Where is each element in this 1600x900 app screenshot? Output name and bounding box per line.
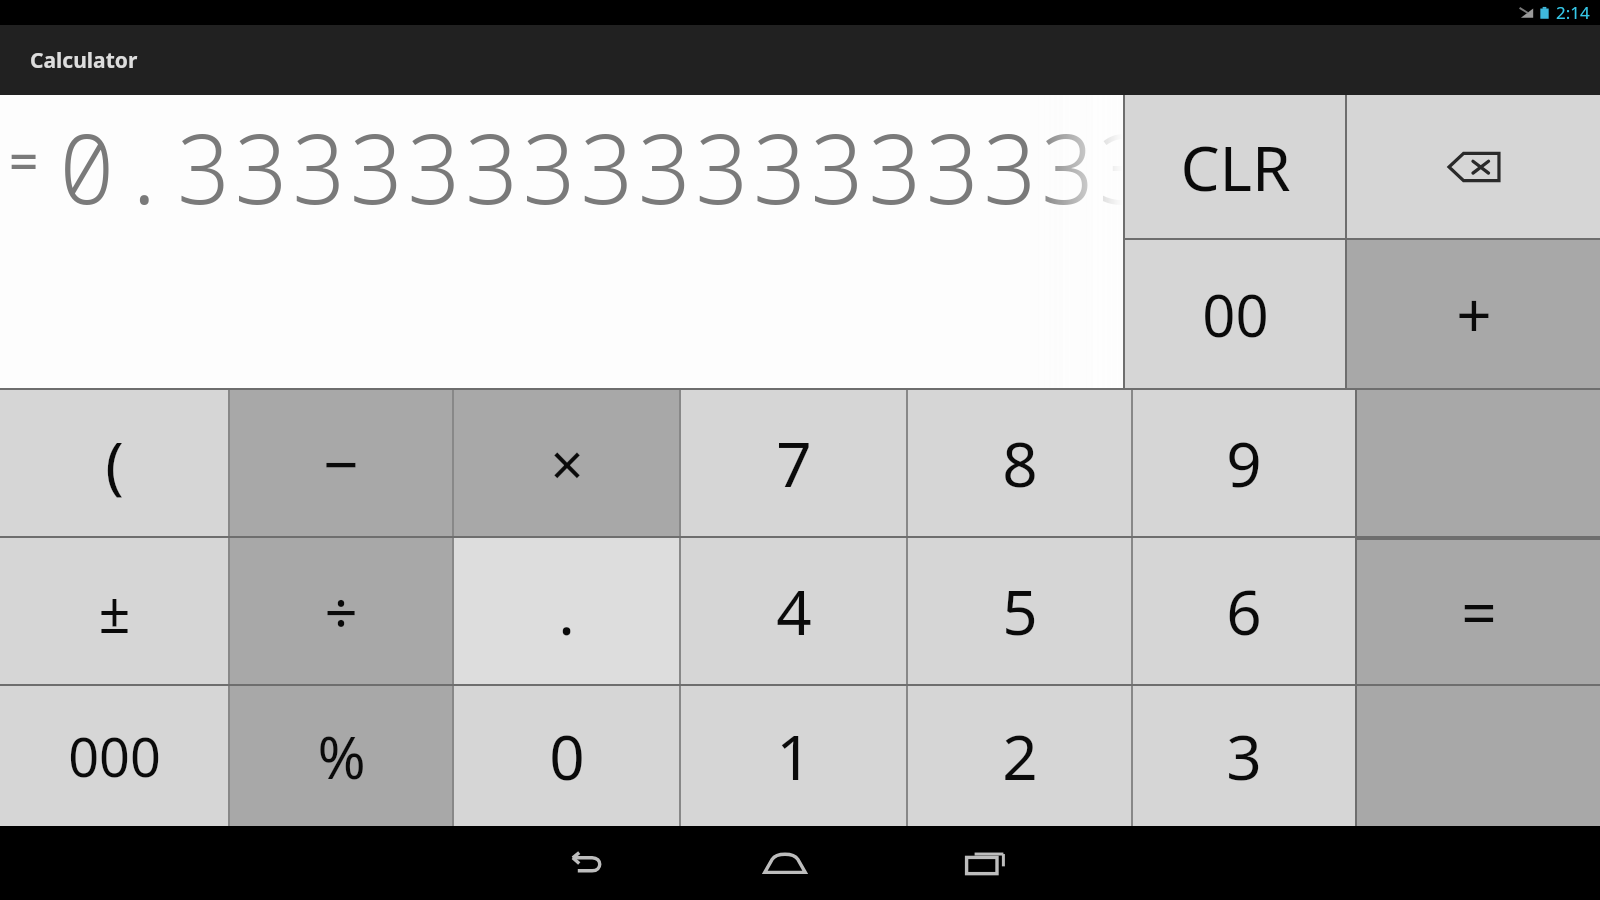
button[interactable]: = — [1357, 540, 1600, 684]
staticText: − — [323, 421, 359, 505]
button[interactable]: 4 — [681, 538, 906, 684]
staticText: . — [558, 569, 575, 653]
button[interactable]: Backspace — [1347, 95, 1600, 238]
staticText: + — [1456, 272, 1492, 356]
button[interactable]: Back — [520, 826, 650, 900]
staticText: 8 — [1002, 421, 1038, 505]
staticText: 5 — [1002, 569, 1038, 653]
staticText: = — [1461, 570, 1497, 654]
staticText: 0.3333333333333333333 — [58, 101, 1123, 232]
staticText: 00 — [1202, 275, 1269, 354]
button[interactable]: 0 — [454, 686, 679, 826]
button[interactable]: ± — [0, 538, 228, 684]
staticText: × — [550, 424, 584, 503]
button[interactable]: % — [230, 686, 452, 826]
staticText: 3 — [1226, 714, 1262, 798]
button[interactable]: CLR — [1125, 95, 1345, 238]
button[interactable]: Home — [720, 826, 850, 900]
button[interactable]: 9 — [1133, 390, 1355, 536]
staticText: 1 — [776, 714, 812, 798]
button[interactable]: 3 — [1133, 686, 1355, 826]
button[interactable]: 6 — [1133, 538, 1355, 684]
staticText: % — [317, 717, 366, 796]
staticText: 6 — [1226, 569, 1262, 653]
button[interactable]: − — [230, 390, 452, 536]
staticText: 000 — [68, 719, 161, 793]
staticText: Calculator — [30, 46, 138, 75]
button[interactable]: 1 — [681, 686, 906, 826]
button[interactable]: ( — [0, 390, 228, 536]
button[interactable]: 8 — [908, 390, 1131, 536]
button[interactable]: . — [454, 538, 679, 684]
button[interactable]: 5 — [908, 538, 1131, 684]
staticText: ± — [98, 573, 131, 649]
button[interactable]: + — [1347, 240, 1600, 388]
button[interactable]: 000 — [0, 686, 228, 826]
staticText: 9 — [1226, 421, 1262, 505]
button[interactable]: 00 — [1125, 240, 1345, 388]
staticText: 4 — [776, 569, 812, 653]
staticText: 2:14 — [1556, 1, 1590, 24]
staticText: CLR — [1180, 125, 1291, 209]
staticText: ÷ — [324, 572, 358, 651]
staticText: 2 — [1002, 714, 1038, 798]
button[interactable]: 2 — [908, 686, 1131, 826]
staticText: 0 — [549, 714, 585, 798]
staticText: = — [8, 125, 40, 196]
button[interactable]: ÷ — [230, 538, 452, 684]
staticText: 7 — [776, 421, 812, 505]
button[interactable]: 7 — [681, 390, 906, 536]
staticText: ( — [105, 421, 124, 505]
button[interactable]: × — [454, 390, 679, 536]
button[interactable]: Recent apps — [920, 826, 1050, 900]
